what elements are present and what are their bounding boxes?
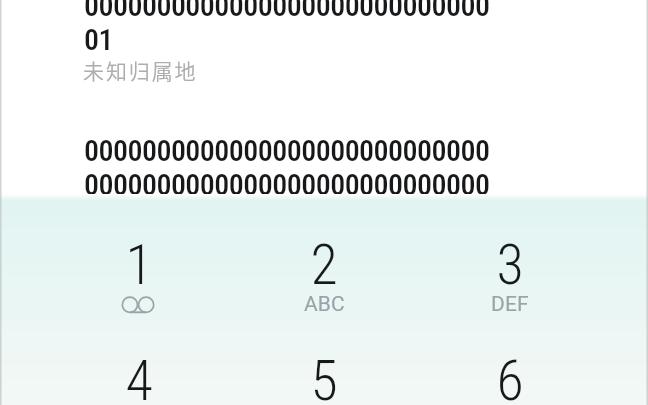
button[interactable]: 5	[239, 336, 409, 405]
staticText: 未知归属地	[83, 55, 198, 85]
staticText: 000000000000000000000000000001	[84, 0, 496, 57]
staticText: 6	[496, 348, 524, 405]
staticText: 2	[310, 232, 338, 298]
staticText: DEF	[491, 292, 529, 317]
staticText: 5	[310, 348, 338, 405]
staticText: ABC	[304, 292, 345, 317]
button[interactable]: 1	[54, 220, 224, 330]
staticText: 4	[125, 348, 153, 405]
staticText: 1	[125, 232, 153, 298]
button[interactable]: 3	[425, 220, 595, 330]
staticText: 3	[496, 232, 524, 298]
button[interactable]: 6	[425, 336, 595, 405]
staticText: 0000000000000000000000000000000000000000…	[84, 133, 496, 202]
button[interactable]: 2	[239, 220, 409, 330]
other: Voicemail	[120, 296, 156, 313]
button[interactable]: 4	[54, 336, 224, 405]
